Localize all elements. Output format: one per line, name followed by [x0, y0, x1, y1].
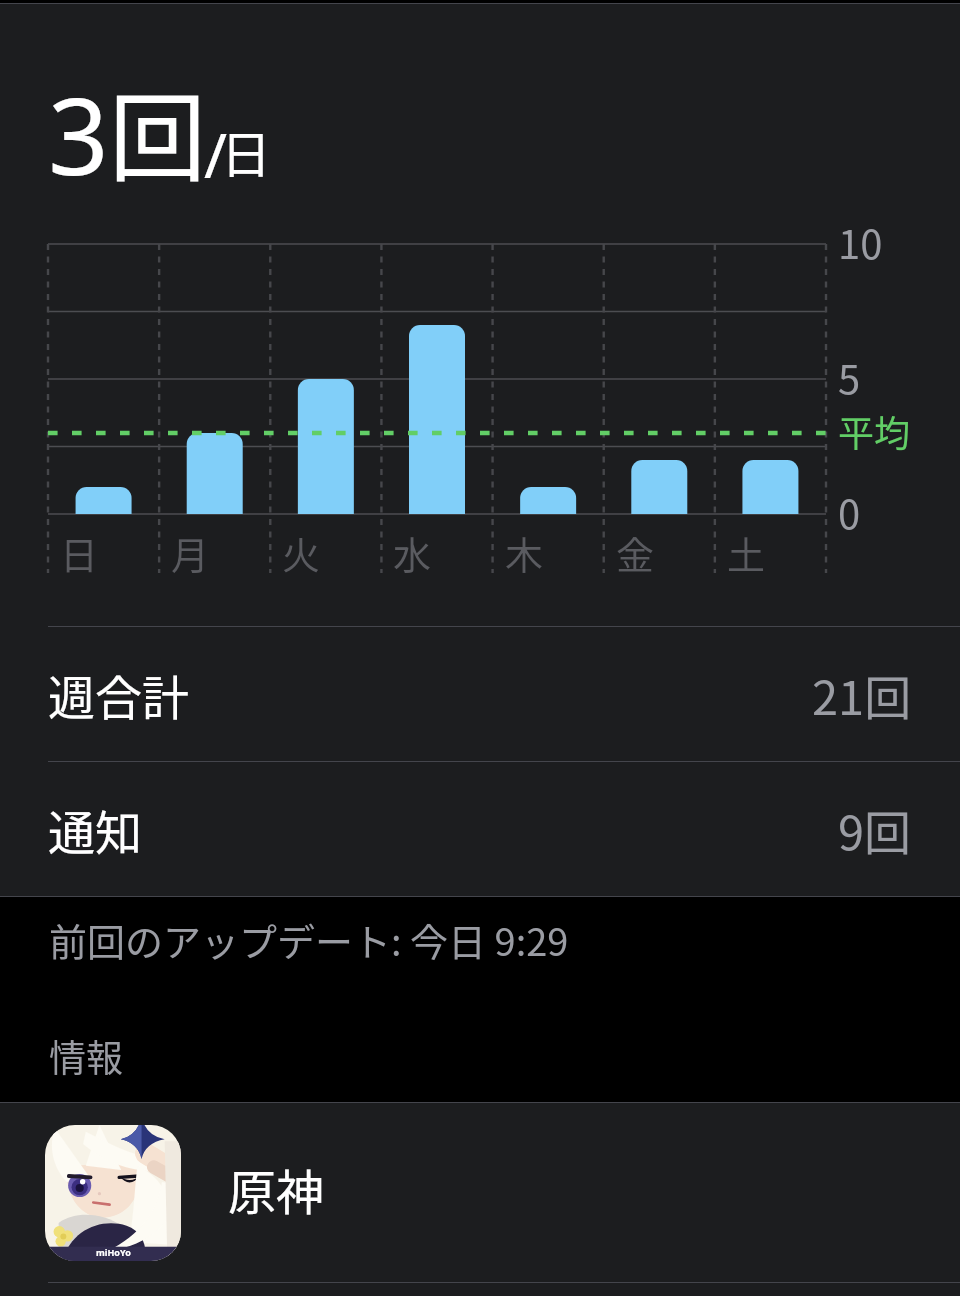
staticText: 10: [838, 213, 883, 271]
staticText: 通知: [48, 795, 142, 863]
staticText: 原神: [228, 1154, 325, 1224]
staticText: 週合計: [48, 660, 189, 728]
staticText: 月: [171, 525, 210, 580]
staticText: 5: [838, 348, 861, 406]
staticText: 3: [48, 62, 109, 206]
staticText: 前回のアップデート: 今日 9:29: [49, 912, 569, 967]
staticText: 火: [282, 525, 321, 580]
staticText: 日: [60, 525, 99, 580]
staticText: 平均: [838, 405, 911, 457]
button[interactable]: 通知: [0, 762, 960, 896]
staticText: 回: [109, 60, 206, 200]
staticText: miHoYo: [96, 1246, 131, 1258]
staticText: 水: [393, 525, 432, 580]
staticText: 日: [221, 115, 271, 187]
staticText: 木: [505, 525, 544, 580]
staticText: 土: [727, 525, 766, 580]
staticText: 情報: [49, 1029, 123, 1083]
staticText: /: [204, 112, 228, 196]
button[interactable]: 週合計: [0, 627, 960, 761]
button[interactable]: 原神 app icon: [0, 1103, 960, 1282]
staticText: 金: [616, 525, 655, 580]
staticText: 0: [838, 483, 861, 541]
staticText: 9回: [838, 795, 912, 863]
other: 原神 app icon: [45, 1125, 181, 1261]
staticText: 21回: [812, 660, 912, 728]
